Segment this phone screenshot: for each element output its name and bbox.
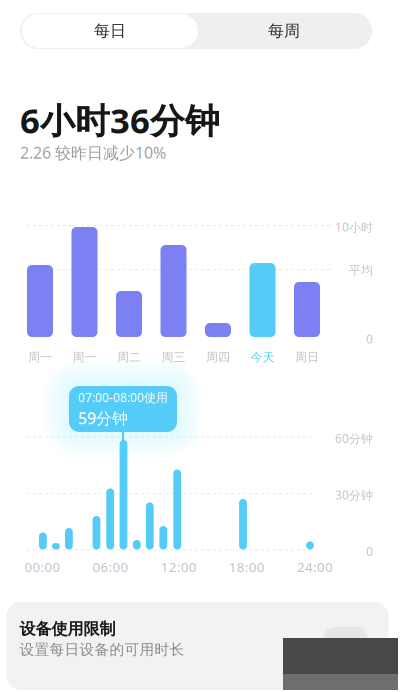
button[interactable]: 每日 <box>22 14 198 48</box>
staticText: 59分钟 <box>78 407 128 428</box>
staticText: 设备使用限制 <box>19 619 115 639</box>
staticText: 00:00 <box>24 558 60 576</box>
staticText: 12:00 <box>161 558 197 576</box>
staticText: 10小时 <box>335 219 373 235</box>
staticText: 平均 <box>349 263 373 278</box>
staticText: 每周 <box>268 21 300 41</box>
staticText: 今天 <box>250 350 274 365</box>
staticText: 每日 <box>94 21 126 41</box>
button[interactable]: 每周 <box>196 14 372 48</box>
staticText: 0 <box>366 543 373 559</box>
staticText: 24:00 <box>297 558 333 576</box>
button[interactable]: 设备使用限制 <box>6 602 388 690</box>
staticText: 0 <box>366 331 373 347</box>
staticText: 周一 <box>72 350 96 365</box>
staticText: 18:00 <box>229 558 265 576</box>
staticText: 07:00-08:00使用 <box>78 389 168 405</box>
staticText: 周一 <box>28 350 52 365</box>
staticText: 30分钟 <box>335 487 373 503</box>
staticText: 2.26 较昨日减少10% <box>20 142 166 163</box>
staticText: 设置每日设备的可用时长 <box>19 641 184 659</box>
staticText: 周日 <box>295 350 319 365</box>
staticText: 周三 <box>161 350 185 365</box>
staticText: 06:00 <box>93 558 129 576</box>
staticText: 6小时36分钟 <box>20 97 220 143</box>
staticText: 周二 <box>117 350 141 365</box>
staticText: 周四 <box>206 350 230 365</box>
staticText: 60分钟 <box>335 430 373 446</box>
